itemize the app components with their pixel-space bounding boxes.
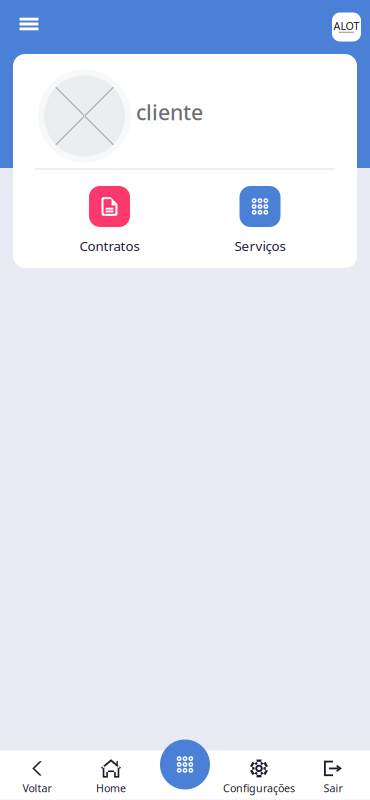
staticText: Home (96, 781, 126, 795)
staticText: Sair (323, 781, 342, 795)
button[interactable]: Menu (9, 5, 49, 49)
button[interactable]: ALOT (332, 12, 361, 41)
button[interactable]: Home (74, 750, 148, 799)
button[interactable]: Contratos (13, 174, 206, 264)
staticText: ALOT (333, 19, 359, 33)
staticText: Serviços (234, 237, 285, 255)
button[interactable]: Sair (296, 750, 370, 799)
staticText: Voltar (22, 781, 51, 795)
button[interactable]: Configurações (222, 750, 296, 799)
button[interactable]: Voltar (0, 750, 74, 799)
staticText: Configurações (223, 781, 295, 795)
button[interactable]: Serviços (206, 174, 314, 264)
button[interactable]: Apps (160, 739, 210, 789)
staticText: Contratos (79, 237, 139, 255)
staticText: cliente (136, 98, 203, 126)
